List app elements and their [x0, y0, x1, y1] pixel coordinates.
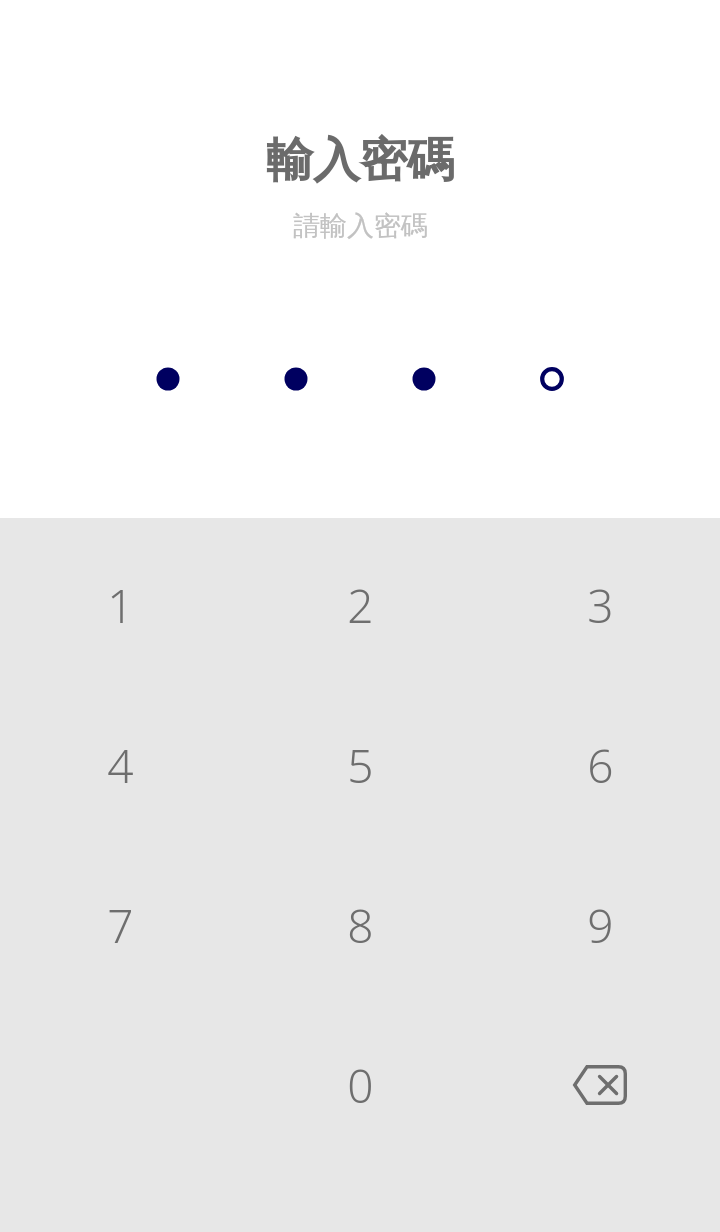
staticText: 輸入密碼: [266, 131, 454, 190]
button[interactable]: 1: [0, 525, 240, 685]
button[interactable]: 8: [240, 845, 480, 1005]
staticText: 3: [587, 574, 614, 637]
staticText: 4: [107, 734, 134, 797]
button[interactable]: 4: [0, 685, 240, 845]
staticText: 2: [347, 574, 374, 637]
button[interactable]: 9: [480, 845, 720, 1005]
staticText: 7: [107, 894, 134, 957]
button[interactable]: 0: [240, 1005, 480, 1165]
staticText: 1: [107, 574, 134, 637]
staticText: 8: [347, 894, 374, 957]
staticText: 請輸入密碼: [293, 209, 428, 243]
button[interactable]: 6: [480, 685, 720, 845]
staticText: 9: [587, 894, 614, 957]
staticText: 5: [347, 734, 374, 797]
button[interactable]: 3: [480, 525, 720, 685]
button[interactable]: 2: [240, 525, 480, 685]
button[interactable]: Backspace: [480, 1005, 720, 1165]
staticText: 0: [347, 1054, 374, 1117]
button[interactable]: 7: [0, 845, 240, 1005]
staticText: 6: [587, 734, 614, 797]
button[interactable]: 5: [240, 685, 480, 845]
